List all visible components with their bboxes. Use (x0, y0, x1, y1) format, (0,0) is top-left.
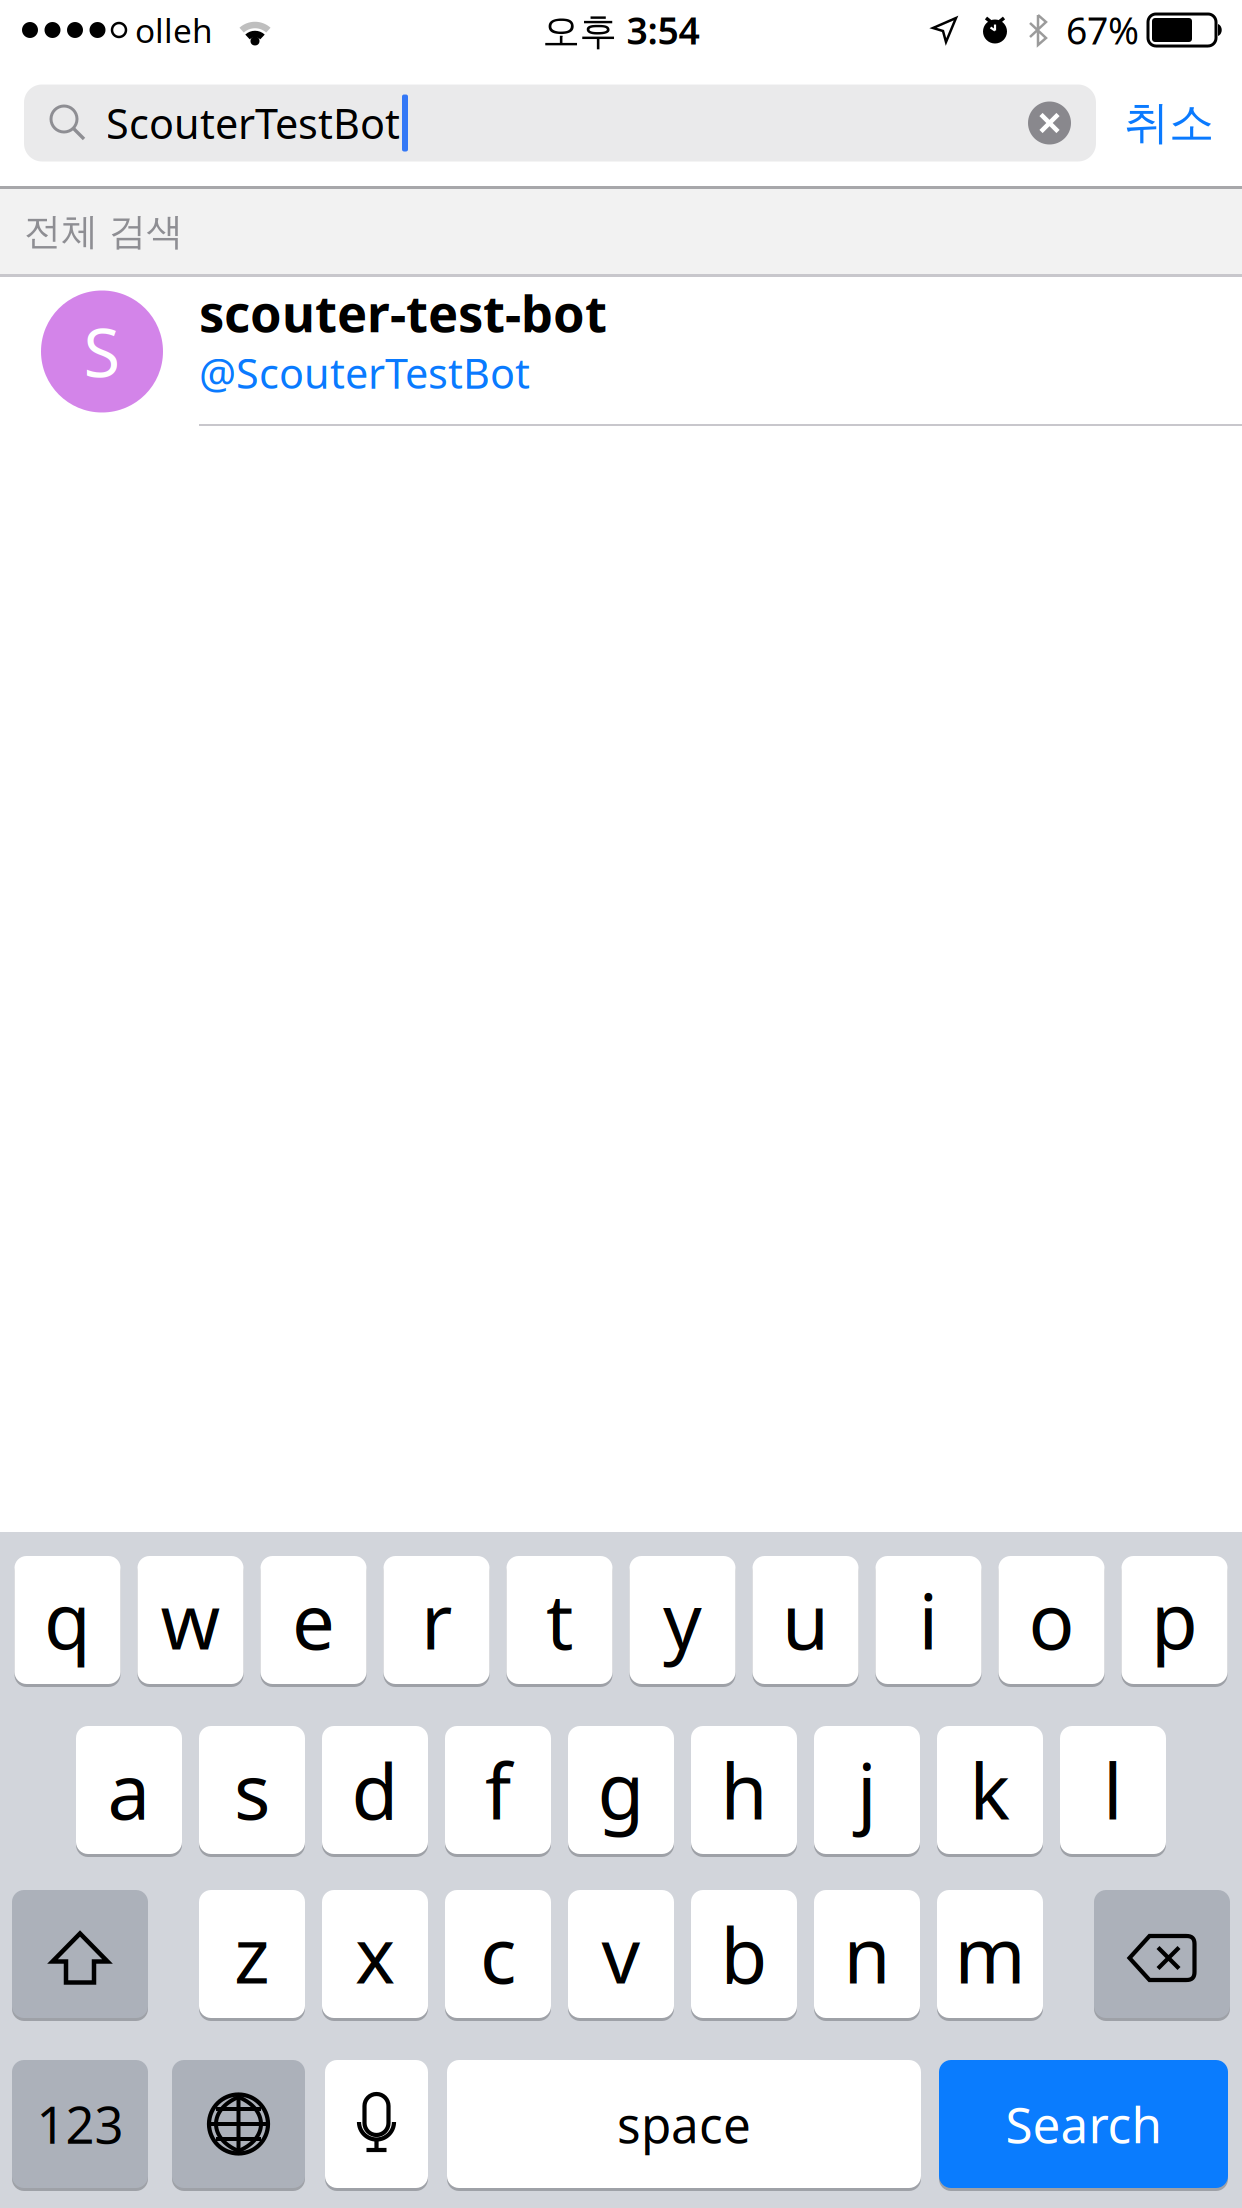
staticText: ScouterTestBot (106, 96, 400, 150)
button[interactable]: space (447, 2060, 921, 2188)
staticText: 전체 검색 (24, 209, 183, 254)
button[interactable]: p (1121, 1556, 1227, 1684)
staticText: k (969, 1739, 1010, 1840)
button[interactable]: Delete (1094, 1890, 1230, 2018)
button[interactable]: Search (939, 2060, 1228, 2188)
staticText: 123 (36, 2090, 123, 2158)
button[interactable]: S (0, 277, 1242, 426)
button[interactable]: m (937, 1890, 1043, 2018)
staticText: s (234, 1739, 270, 1840)
button[interactable]: o (998, 1556, 1104, 1684)
staticText: e (292, 1569, 335, 1670)
button[interactable]: r (383, 1556, 489, 1684)
staticText: S (83, 307, 120, 396)
staticText: j (857, 1739, 877, 1840)
button[interactable]: n (814, 1890, 920, 2018)
button[interactable]: a (76, 1726, 182, 1854)
button[interactable]: w (137, 1556, 243, 1684)
button[interactable]: y (629, 1556, 735, 1684)
staticText: p (1151, 1569, 1198, 1670)
button[interactable]: g (568, 1726, 674, 1854)
staticText: g (597, 1739, 644, 1840)
button[interactable]: f (445, 1726, 551, 1854)
staticText: scouter-test-bot (199, 279, 607, 346)
button[interactable]: Dictate (325, 2060, 428, 2188)
button[interactable]: z (199, 1890, 305, 2018)
staticText: f (485, 1739, 511, 1840)
staticText: y (663, 1569, 702, 1670)
button[interactable]: Numbers (12, 2060, 148, 2188)
staticText: u (782, 1569, 829, 1670)
button[interactable]: d (322, 1726, 428, 1854)
staticText: h (720, 1739, 767, 1840)
staticText: @ScouterTestBot (199, 345, 530, 400)
staticText: c (480, 1903, 516, 2004)
staticText: q (44, 1569, 91, 1670)
button[interactable]: Shift (12, 1890, 148, 2018)
button[interactable]: i (875, 1556, 981, 1684)
button[interactable]: 취소 (1096, 60, 1242, 186)
staticText: space (617, 2091, 751, 2157)
staticText: l (1103, 1739, 1123, 1840)
staticText: olleh (135, 8, 213, 52)
staticText: v (601, 1903, 640, 2004)
staticText: b (720, 1903, 767, 2004)
button[interactable]: t (506, 1556, 612, 1684)
button[interactable]: e (260, 1556, 366, 1684)
button[interactable]: u (752, 1556, 858, 1684)
staticText: 오후 3:54 (542, 5, 699, 55)
staticText: Search (1005, 2091, 1161, 2157)
button[interactable]: q (14, 1556, 120, 1684)
staticText: m (954, 1903, 1025, 2004)
staticText: 67% (1066, 5, 1139, 55)
button[interactable]: Search field (24, 84, 1096, 161)
staticText: w (160, 1569, 220, 1670)
button[interactable]: k (937, 1726, 1043, 1854)
button[interactable]: l (1060, 1726, 1166, 1854)
button[interactable]: Clear text (1028, 101, 1096, 144)
staticText: r (421, 1569, 452, 1670)
staticText: i (918, 1569, 938, 1670)
staticText: x (355, 1903, 395, 2004)
button[interactable]: Next keyboard (172, 2060, 305, 2188)
staticText: a (107, 1739, 150, 1840)
button[interactable]: b (691, 1890, 797, 2018)
button[interactable]: s (199, 1726, 305, 1854)
staticText: 취소 (1124, 95, 1214, 151)
staticText: n (843, 1903, 890, 2004)
button[interactable]: v (568, 1890, 674, 2018)
button[interactable]: j (814, 1726, 920, 1854)
staticText: d (351, 1739, 398, 1840)
button[interactable]: x (322, 1890, 428, 2018)
button[interactable]: h (691, 1726, 797, 1854)
staticText: z (234, 1903, 270, 2004)
button[interactable]: c (445, 1890, 551, 2018)
staticText: o (1028, 1569, 1074, 1670)
staticText: t (546, 1569, 573, 1670)
